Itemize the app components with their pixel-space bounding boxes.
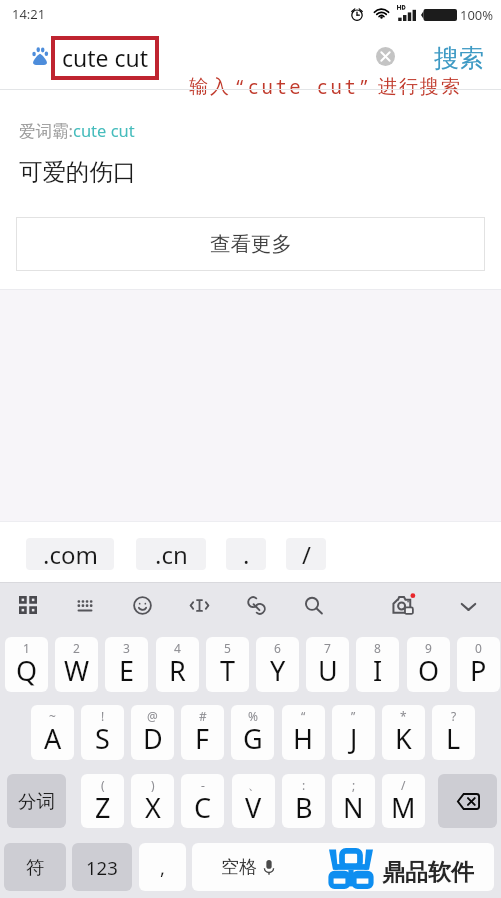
button[interactable]: * bbox=[382, 705, 425, 760]
button[interactable]: Camera translate bbox=[383, 584, 425, 626]
staticText: “ bbox=[301, 708, 306, 724]
staticText: V bbox=[245, 789, 262, 826]
staticText: 3 bbox=[123, 640, 130, 656]
staticText: U bbox=[318, 652, 338, 689]
button[interactable]: 空格 bbox=[192, 843, 494, 891]
button[interactable]: 搜索 bbox=[434, 43, 484, 74]
button[interactable]: 5 bbox=[206, 637, 249, 692]
button[interactable]: 0 bbox=[457, 637, 500, 692]
staticText: / bbox=[302, 538, 311, 570]
button[interactable]: ( bbox=[81, 774, 124, 828]
button[interactable]: Attach bbox=[235, 584, 277, 626]
button[interactable]: 1 bbox=[5, 637, 48, 692]
button[interactable]: % bbox=[231, 705, 274, 760]
staticText: cute cut bbox=[73, 119, 135, 141]
staticText: Z bbox=[95, 789, 111, 826]
button[interactable]: . bbox=[226, 538, 266, 570]
staticText: .com bbox=[43, 538, 98, 570]
staticText: ( bbox=[101, 777, 105, 793]
button[interactable]: Clear query bbox=[373, 44, 397, 68]
button[interactable]: .com bbox=[26, 538, 114, 570]
button[interactable]: 查看更多 bbox=[16, 217, 485, 271]
button[interactable]: Text cursor bbox=[178, 584, 220, 626]
button[interactable]: Backspace bbox=[438, 774, 497, 828]
staticText: 5 bbox=[224, 640, 231, 656]
button[interactable]: Hide keyboard bbox=[447, 585, 489, 627]
button[interactable]: / bbox=[382, 774, 425, 828]
staticText: H bbox=[293, 720, 314, 757]
staticText: 7 bbox=[324, 640, 331, 656]
staticText: 1 bbox=[23, 640, 30, 656]
button[interactable]: 3 bbox=[105, 637, 148, 692]
staticText: 进行搜索 bbox=[377, 75, 461, 99]
staticText: : bbox=[302, 777, 306, 793]
button[interactable]: 、 bbox=[232, 774, 275, 828]
staticText: , bbox=[160, 855, 165, 880]
staticText: D bbox=[143, 720, 163, 757]
button[interactable]: : bbox=[282, 774, 325, 828]
button[interactable]: ? bbox=[432, 705, 475, 760]
button[interactable]: - bbox=[181, 774, 224, 828]
button[interactable]: ; bbox=[332, 774, 375, 828]
staticText: X bbox=[145, 789, 161, 826]
staticText: 0 bbox=[475, 640, 482, 656]
staticText: J bbox=[350, 720, 358, 757]
staticText: 100% bbox=[460, 6, 494, 24]
button[interactable]: 分词 bbox=[7, 774, 66, 828]
staticText: 、 bbox=[248, 777, 260, 792]
button[interactable]: 4 bbox=[156, 637, 199, 692]
staticText: # bbox=[199, 708, 207, 724]
button[interactable]: , bbox=[139, 843, 186, 891]
button[interactable]: “ bbox=[282, 705, 325, 760]
button[interactable]: 7 bbox=[306, 637, 349, 692]
staticText: / bbox=[401, 777, 406, 793]
button[interactable]: 6 bbox=[256, 637, 299, 692]
staticText: “cute cut” bbox=[234, 74, 373, 100]
staticText: * bbox=[400, 708, 407, 724]
staticText: Q bbox=[16, 652, 38, 689]
button[interactable]: 2 bbox=[55, 637, 98, 692]
staticText: 符 bbox=[26, 856, 45, 879]
staticText: @ bbox=[147, 708, 158, 724]
staticText: C bbox=[194, 789, 212, 826]
staticText: K bbox=[395, 720, 412, 757]
staticText: A bbox=[44, 720, 62, 757]
staticText: G bbox=[243, 720, 263, 757]
staticText: S bbox=[95, 720, 110, 757]
staticText: E bbox=[119, 652, 135, 689]
staticText: % bbox=[248, 708, 258, 724]
button[interactable]: ~ bbox=[31, 705, 74, 760]
staticText: 8 bbox=[374, 640, 381, 656]
button[interactable]: .cn bbox=[136, 538, 206, 570]
button[interactable]: / bbox=[286, 538, 326, 570]
button[interactable]: ” bbox=[332, 705, 375, 760]
button[interactable]: ) bbox=[131, 774, 174, 828]
staticText: 2 bbox=[73, 640, 80, 656]
button[interactable]: Apps bbox=[7, 584, 49, 626]
staticText: ) bbox=[151, 777, 155, 793]
button[interactable]: # bbox=[181, 705, 224, 760]
staticText: P bbox=[470, 652, 487, 689]
staticText: T bbox=[220, 652, 236, 689]
staticText: O bbox=[418, 652, 440, 689]
button[interactable]: cute cut bbox=[53, 38, 157, 78]
button[interactable]: @ bbox=[131, 705, 174, 760]
staticText: ? bbox=[451, 708, 457, 724]
button[interactable]: 9 bbox=[407, 637, 450, 692]
button[interactable]: Emoji bbox=[121, 584, 163, 626]
staticText: Y bbox=[270, 652, 286, 689]
button[interactable]: 符 bbox=[4, 843, 66, 891]
button[interactable]: Search bbox=[292, 584, 334, 626]
staticText: 输入 bbox=[188, 75, 230, 99]
button[interactable]: ! bbox=[81, 705, 124, 760]
button[interactable]: Keyboard layout bbox=[64, 584, 106, 626]
staticText: 空格 bbox=[221, 856, 257, 879]
button[interactable]: 123 bbox=[72, 843, 132, 891]
staticText: M bbox=[391, 789, 416, 826]
staticText: 搜索 bbox=[434, 43, 484, 74]
staticText: 9 bbox=[425, 640, 432, 656]
staticText: 爱词霸: bbox=[19, 119, 73, 142]
button[interactable]: 8 bbox=[356, 637, 399, 692]
staticText: - bbox=[201, 777, 205, 793]
staticText: .cn bbox=[155, 538, 188, 570]
